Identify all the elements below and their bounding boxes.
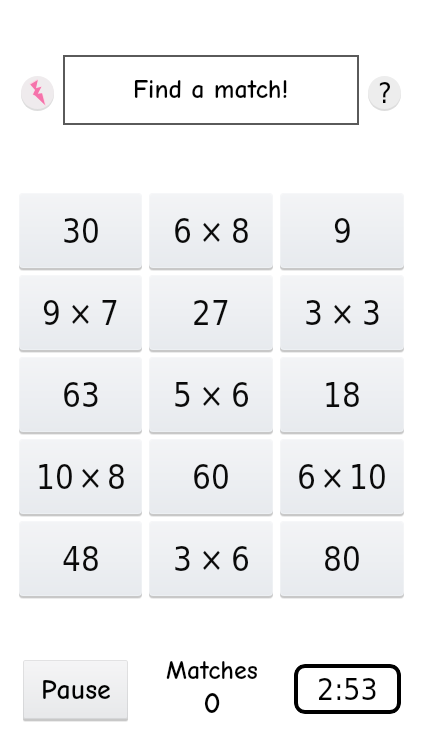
- staticText: 10: [349, 458, 387, 496]
- button[interactable]: Pause: [23, 660, 128, 719]
- staticText: Find a match!: [133, 75, 289, 105]
- staticText: ×: [78, 458, 103, 496]
- staticText: ×: [68, 294, 93, 332]
- staticText: 27: [192, 294, 230, 332]
- staticText: ×: [330, 294, 355, 332]
- button[interactable]: 6: [280, 439, 404, 514]
- button[interactable]: 3: [149, 521, 273, 596]
- button[interactable]: 80: [280, 521, 404, 596]
- staticText: ×: [199, 212, 224, 250]
- staticText: 9: [42, 294, 61, 332]
- button[interactable]: 3: [280, 275, 404, 350]
- button[interactable]: 63: [19, 357, 142, 432]
- button[interactable]: 2:53: [294, 664, 401, 714]
- staticText: 2:53: [317, 672, 378, 707]
- staticText: ×: [199, 376, 224, 414]
- staticText: 6: [173, 212, 192, 250]
- staticText: 9: [333, 212, 352, 250]
- staticText: 10: [36, 458, 74, 496]
- staticText: 6: [231, 376, 250, 414]
- staticText: 3: [304, 294, 323, 332]
- button[interactable]: 5: [149, 357, 273, 432]
- button[interactable]: 30: [19, 193, 142, 268]
- button[interactable]: 10: [19, 439, 142, 514]
- staticText: 8: [231, 212, 250, 250]
- button[interactable]: 18: [280, 357, 404, 432]
- button[interactable]: Help: [368, 76, 401, 109]
- button[interactable]: 9: [280, 193, 404, 268]
- button[interactable]: 9: [19, 275, 142, 350]
- staticText: 80: [323, 540, 361, 578]
- staticText: 48: [62, 540, 100, 578]
- staticText: 18: [323, 376, 361, 414]
- button[interactable]: 27: [149, 275, 273, 350]
- button[interactable]: Power-up: [21, 76, 54, 109]
- staticText: ×: [199, 540, 224, 578]
- staticText: 8: [107, 458, 126, 496]
- staticText: 5: [173, 376, 192, 414]
- staticText: 6: [297, 458, 316, 496]
- staticText: Pause: [41, 674, 111, 706]
- button[interactable]: 48: [19, 521, 142, 596]
- staticText: 7: [100, 294, 119, 332]
- button[interactable]: 60: [149, 439, 273, 514]
- staticText: 0: [203, 686, 221, 721]
- staticText: 60: [192, 458, 230, 496]
- staticText: 3: [173, 540, 192, 578]
- button[interactable]: 6: [149, 193, 273, 268]
- staticText: 3: [362, 294, 381, 332]
- staticText: 30: [62, 212, 100, 250]
- staticText: 6: [231, 540, 250, 578]
- staticText: Matches: [166, 656, 258, 686]
- staticText: ×: [320, 458, 345, 496]
- staticText: ?: [378, 76, 392, 109]
- staticText: 63: [62, 376, 100, 414]
